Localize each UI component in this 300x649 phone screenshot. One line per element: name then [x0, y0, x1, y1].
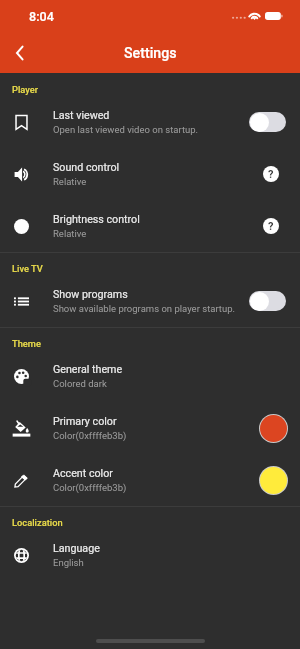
staticText: Color(0xffffeb3b) [53, 430, 127, 441]
staticText: Settings [124, 45, 177, 62]
staticText: Accent color [53, 467, 113, 480]
button[interactable]: Last viewed [0, 96, 300, 148]
staticText: General theme [53, 363, 123, 376]
button[interactable]: Toggle [249, 291, 286, 311]
staticText: Sound control [53, 161, 120, 174]
staticText: Last viewed [53, 109, 110, 122]
button[interactable]: Help [263, 218, 279, 234]
staticText: Show programs [53, 288, 128, 301]
staticText: English [53, 557, 84, 568]
button[interactable]: Toggle [249, 112, 286, 132]
staticText: 8:04 [29, 9, 54, 24]
staticText: Player [12, 84, 39, 95]
staticText: Theme [12, 338, 41, 349]
staticText: Show available programs on player startu… [53, 303, 236, 314]
button[interactable]: Show programs [0, 275, 300, 327]
button[interactable]: Pick color [259, 414, 288, 443]
button[interactable]: Accent color [0, 454, 300, 506]
staticText: Localization [12, 517, 63, 528]
staticText: Language [53, 542, 100, 555]
button[interactable]: Pick color [259, 466, 288, 495]
button[interactable]: Help [263, 166, 279, 182]
button[interactable]: Language [0, 529, 300, 581]
staticText: Primary color [53, 415, 117, 428]
button[interactable]: Primary color [0, 402, 300, 454]
staticText: Colored dark [53, 378, 107, 389]
button[interactable]: Sound control [0, 148, 300, 200]
button[interactable]: General theme [0, 350, 300, 402]
staticText: Color(0xffffeb3b) [53, 482, 127, 493]
staticText: Open last viewed video on startup. [53, 124, 199, 135]
staticText: Relative [53, 228, 87, 239]
staticText: ? [268, 168, 274, 181]
staticText: Live TV [12, 263, 43, 274]
staticText: ? [268, 220, 274, 233]
staticText: Brightness control [53, 213, 140, 226]
staticText: Relative [53, 176, 87, 187]
button[interactable]: Brightness control [0, 200, 300, 252]
button[interactable]: Back [0, 33, 40, 73]
